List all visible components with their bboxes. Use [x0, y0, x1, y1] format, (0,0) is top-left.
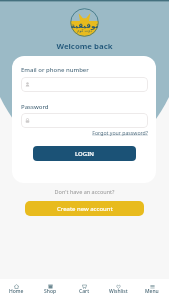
staticText: Don't have an account?: [0, 188, 169, 195]
staticText: Cart: [79, 288, 90, 295]
staticText: Forgot your password?: [88, 129, 148, 136]
staticText: Email or phone number: [21, 66, 89, 74]
button[interactable]: Shop: [33, 279, 67, 300]
staticText: Shop: [44, 288, 57, 295]
button[interactable]: Cart: [67, 279, 101, 300]
staticText: Create new account: [57, 205, 113, 213]
button[interactable]: Wishlist: [101, 279, 135, 300]
staticText: Home: [9, 288, 24, 295]
button[interactable]: [21, 113, 148, 128]
button[interactable]: Create new account: [25, 201, 144, 216]
button[interactable]: Home: [0, 279, 33, 300]
staticText: Password: [21, 103, 49, 111]
button[interactable]: LOGIN: [33, 146, 136, 161]
button[interactable]: [21, 77, 148, 92]
button[interactable]: Forgot your password?: [88, 129, 148, 136]
staticText: توفيقية: [70, 21, 99, 29]
staticText: Welcome back: [0, 41, 169, 52]
staticText: Menu: [145, 288, 159, 295]
staticText: LOGIN: [75, 150, 94, 158]
button[interactable]: Menu: [135, 279, 169, 300]
staticText: Wishlist: [109, 288, 128, 295]
staticText: دوت كوم: [70, 28, 99, 33]
